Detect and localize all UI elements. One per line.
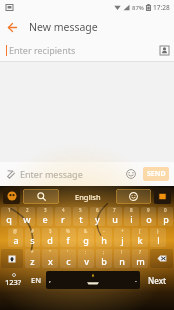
button[interactable]: $ — [42, 228, 58, 247]
button[interactable]: : — [78, 249, 94, 268]
staticText: 2 — [26, 207, 29, 213]
button[interactable]: EN — [26, 269, 45, 291]
staticText: b — [101, 255, 107, 267]
staticText: ) — [157, 228, 159, 234]
staticText: * — [31, 249, 34, 255]
button[interactable]: Next — [141, 269, 174, 291]
staticText: 0 — [164, 207, 167, 213]
staticText: z — [30, 255, 35, 267]
staticText: New message — [29, 20, 98, 34]
button[interactable]: - — [96, 228, 112, 247]
staticText: o — [146, 213, 152, 225]
button[interactable]: ) — [150, 228, 166, 247]
button[interactable]: 7 — [107, 207, 122, 226]
staticText: 1 — [8, 207, 11, 213]
button[interactable]: Emoji — [121, 164, 141, 184]
staticText: y — [95, 213, 100, 225]
button[interactable]: Enter recipients — [0, 39, 174, 61]
button[interactable]: ( — [132, 228, 148, 247]
staticText: k — [137, 234, 143, 246]
button[interactable]: 9 — [141, 207, 156, 226]
button[interactable]: 5 — [73, 207, 88, 226]
button[interactable]: ; — [96, 249, 112, 268]
staticText: . — [135, 275, 137, 285]
button[interactable]: Shift — [1, 249, 23, 268]
staticText: w — [23, 213, 31, 225]
button[interactable]: 123? — [0, 269, 26, 291]
button[interactable]: Add contact — [154, 40, 174, 60]
staticText: v — [84, 255, 89, 267]
staticText: 4 — [62, 207, 65, 213]
staticText: EN — [31, 275, 41, 285]
staticText: 7 — [113, 207, 116, 213]
staticText: & — [84, 228, 88, 234]
staticText: g — [83, 234, 89, 246]
button[interactable]: 4 — [55, 207, 71, 226]
button[interactable]: 1 — [1, 207, 17, 226]
staticText: + — [121, 228, 124, 234]
staticText: " — [49, 249, 51, 255]
button[interactable]: " — [42, 249, 58, 268]
staticText: e — [42, 213, 48, 225]
button[interactable]: SEND — [143, 167, 169, 181]
staticText: q — [6, 213, 12, 225]
staticText: ! — [121, 249, 123, 255]
staticText: 9 — [147, 207, 150, 213]
staticText: Enter message — [20, 168, 83, 180]
button[interactable]: ! — [114, 249, 130, 268]
staticText: ( — [139, 228, 141, 234]
button[interactable]: ' — [60, 249, 76, 268]
staticText: c — [66, 255, 71, 267]
staticText: h — [101, 234, 107, 246]
staticText: i — [130, 213, 133, 225]
staticText: p — [163, 213, 169, 225]
button[interactable]: @ — [8, 228, 23, 247]
button[interactable]: Clipboard — [154, 188, 171, 204]
button[interactable]: + — [114, 228, 130, 247]
staticText: @ — [13, 228, 18, 234]
button[interactable]: 2 — [19, 207, 35, 226]
button[interactable] — [23, 189, 59, 204]
staticText: ; — [103, 249, 105, 255]
staticText: 87% — [132, 4, 144, 12]
staticText: a — [13, 234, 19, 246]
staticText: # — [31, 228, 34, 234]
button[interactable]: Back — [0, 15, 24, 39]
staticText: % — [66, 228, 70, 234]
button[interactable]: 6 — [90, 207, 105, 226]
button[interactable]: 3 — [37, 207, 53, 226]
staticText: 5 — [79, 207, 82, 213]
button[interactable]: & — [78, 228, 94, 247]
staticText: Enter recipients — [9, 44, 76, 56]
button[interactable]: Backspace — [150, 249, 173, 268]
staticText: n — [119, 255, 125, 267]
button[interactable]: English — [61, 189, 114, 204]
staticText: r — [61, 213, 65, 225]
staticText: 3 — [44, 207, 47, 213]
button[interactable]: Attach — [0, 164, 20, 184]
staticText: l — [157, 234, 160, 246]
staticText: $ — [49, 228, 52, 234]
staticText: ? — [139, 249, 141, 255]
button[interactable]: Space — [46, 271, 140, 289]
staticText: 123? — [5, 277, 22, 287]
button[interactable]: ? — [132, 249, 148, 268]
button[interactable]: % — [60, 228, 76, 247]
staticText: ' — [67, 249, 69, 255]
button[interactable]: 8 — [124, 207, 139, 226]
button[interactable]: # — [25, 228, 40, 247]
button[interactable] — [116, 189, 151, 204]
button[interactable]: Theme — [3, 188, 20, 204]
staticText: , — [49, 275, 51, 285]
staticText: English — [75, 192, 101, 202]
staticText: - — [103, 228, 105, 234]
staticText: SEND — [147, 169, 166, 179]
staticText: u — [112, 213, 118, 225]
staticText: d — [47, 234, 53, 246]
button[interactable]: 0 — [158, 207, 173, 226]
staticText: 17:28 — [153, 3, 170, 12]
button[interactable]: * — [25, 249, 40, 268]
staticText: f — [66, 234, 70, 246]
staticText: t — [79, 213, 83, 225]
staticText: j — [121, 234, 124, 246]
